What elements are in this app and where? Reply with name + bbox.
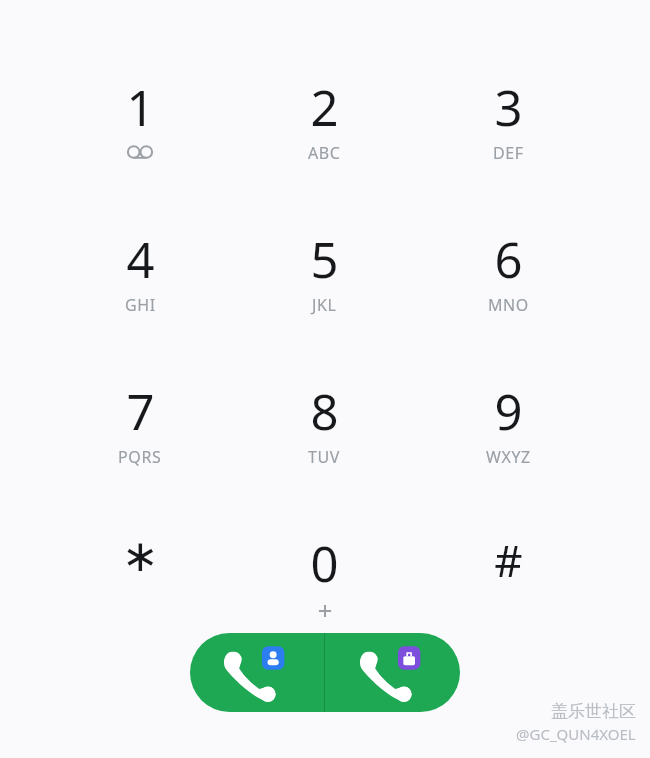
button[interactable]: 9 [416,378,600,473]
button[interactable]: # [416,530,600,625]
staticText: 8 [310,378,339,445]
button[interactable]: 6 [416,226,600,321]
staticText: DEF [493,142,524,164]
staticText: GHI [125,294,156,316]
button[interactable]: 7 [48,378,232,473]
staticText: # [494,530,523,590]
button[interactable]: Call with personal profile [190,633,324,712]
staticText: 9 [494,378,523,445]
button[interactable]: Call with work profile [325,633,460,712]
staticText: 盖乐世社区 [551,701,636,722]
staticText: ABC [308,142,341,164]
staticText: 2 [310,74,339,141]
staticText: 4 [126,226,155,293]
button[interactable]: 4 [48,226,232,321]
button[interactable]: 8 [232,378,416,473]
staticText: ∗ [122,530,159,581]
staticText: 7 [126,378,155,445]
staticText: WXYZ [486,446,531,468]
staticText: 3 [494,74,523,141]
staticText: 6 [494,226,523,293]
staticText: JKL [312,294,337,316]
button[interactable]: 5 [232,226,416,321]
button[interactable]: 3 [416,74,600,169]
staticText: 5 [310,226,339,293]
staticText: @GC_QUN4XOEL [516,724,636,744]
staticText: TUV [308,446,340,468]
staticText: PQRS [118,446,162,468]
staticText: 1 [126,74,155,141]
button[interactable]: 2 [232,74,416,169]
staticText: MNO [488,294,529,316]
button[interactable]: 0 [232,530,416,625]
button[interactable]: ∗ [48,530,232,625]
staticText: 0 [310,530,339,597]
button[interactable]: 1 [48,74,232,169]
